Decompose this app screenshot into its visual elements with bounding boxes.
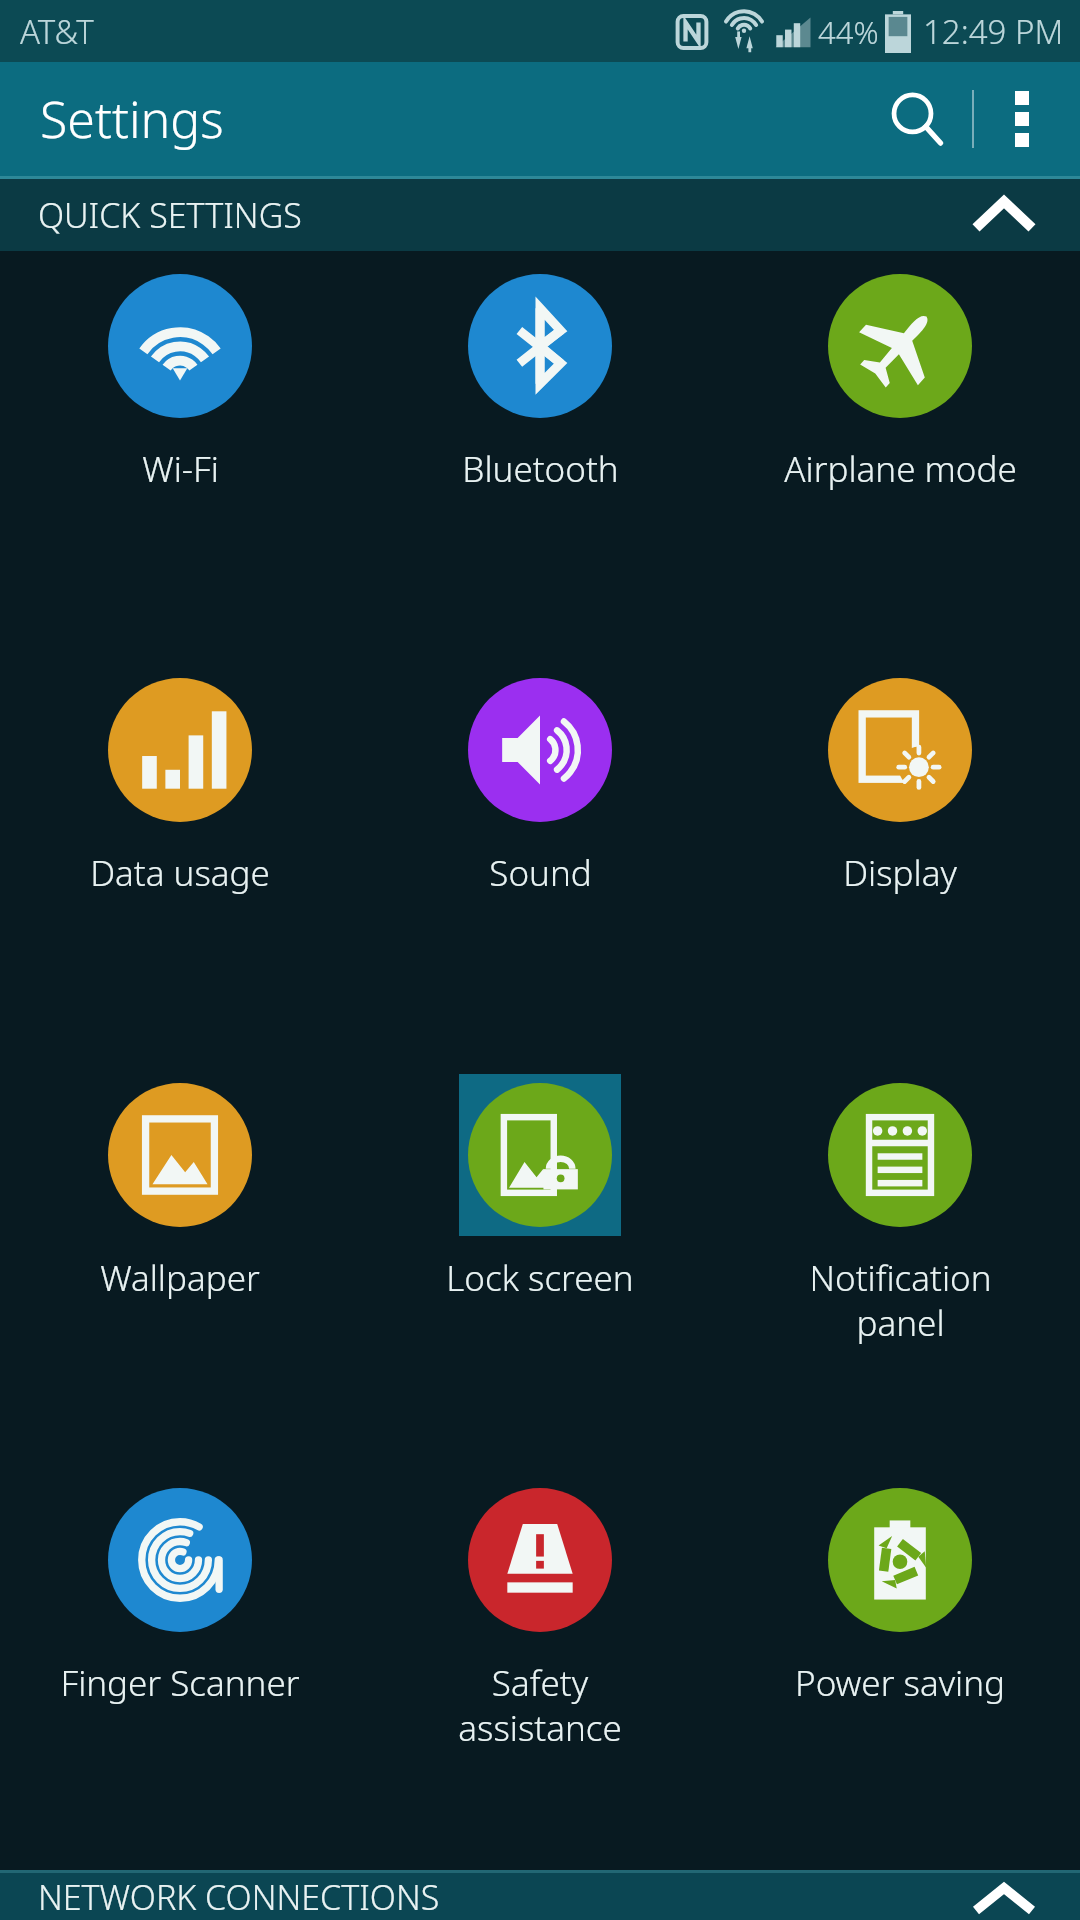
staticText: Wallpaper — [100, 1254, 260, 1302]
staticText: Wi-Fi — [142, 445, 219, 493]
staticText: Settings — [40, 85, 224, 153]
button[interactable]: Safety assistance — [360, 1465, 720, 1870]
staticText: Finger Scanner — [60, 1659, 300, 1707]
button[interactable]: Airplane mode — [720, 251, 1080, 655]
staticText: AT&T — [20, 9, 94, 54]
button[interactable]: Data usage — [0, 655, 360, 1060]
staticText: Notification panel — [809, 1254, 992, 1346]
staticText: Bluetooth — [462, 445, 619, 493]
staticText: Airplane mode — [784, 445, 1017, 493]
staticText: 44% — [818, 11, 879, 53]
button[interactable]: Wallpaper — [0, 1060, 360, 1465]
staticText: Data usage — [90, 849, 270, 897]
button[interactable]: Search — [862, 62, 972, 176]
staticText: Safety assistance — [458, 1659, 622, 1751]
button[interactable]: Wi-Fi — [0, 251, 360, 655]
staticText: QUICK SETTINGS — [38, 192, 302, 238]
staticText: Lock screen — [446, 1254, 634, 1302]
staticText: Power saving — [795, 1659, 1005, 1707]
button[interactable]: Power saving — [720, 1465, 1080, 1870]
button[interactable]: More options — [974, 62, 1070, 176]
button[interactable]: Notification panel — [720, 1060, 1080, 1465]
staticText: Display — [843, 849, 957, 897]
button[interactable]: Bluetooth — [360, 251, 720, 655]
button[interactable]: NETWORK CONNECTIONS — [0, 1873, 1080, 1920]
button[interactable]: Finger Scanner — [0, 1465, 360, 1870]
button[interactable]: QUICK SETTINGS — [0, 179, 1080, 251]
button[interactable]: Display — [720, 655, 1080, 1060]
button[interactable]: Lock screen — [360, 1060, 720, 1465]
button[interactable]: Sound — [360, 655, 720, 1060]
staticText: Sound — [489, 849, 592, 897]
staticText: 12:49 PM — [923, 9, 1064, 54]
staticText: NETWORK CONNECTIONS — [38, 1874, 440, 1920]
